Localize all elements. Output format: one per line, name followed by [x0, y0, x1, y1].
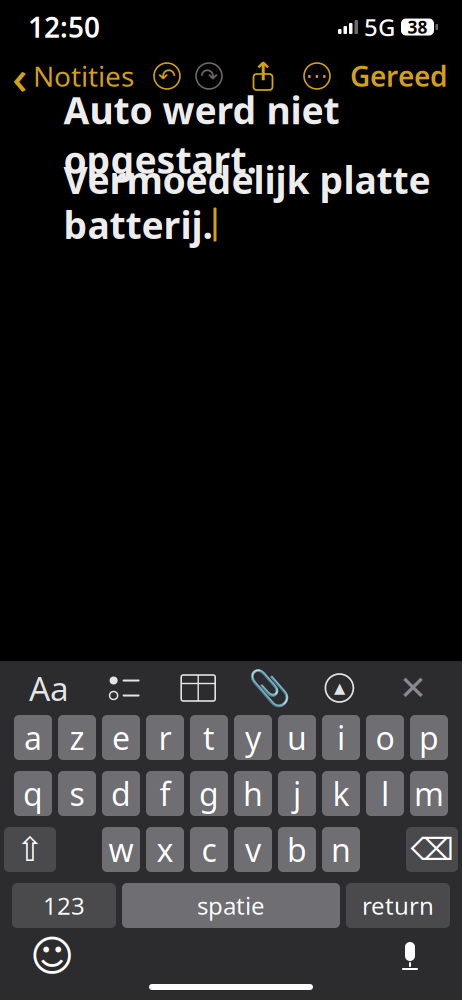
staticText: 5G: [364, 11, 395, 43]
button[interactable]: o: [366, 715, 404, 760]
button[interactable]: t: [190, 715, 228, 760]
button[interactable]: q: [14, 771, 52, 816]
staticText: v: [245, 828, 261, 871]
staticText: ☺: [30, 932, 74, 980]
staticText: x: [156, 828, 173, 871]
button[interactable]: u: [278, 715, 316, 760]
button[interactable]: f: [146, 771, 184, 816]
button[interactable]: Checklist: [96, 666, 154, 710]
button[interactable]: Markup: [312, 666, 366, 710]
button[interactable]: p: [410, 715, 448, 760]
button[interactable]: l: [366, 771, 404, 816]
button[interactable]: More: [296, 61, 338, 91]
button[interactable]: x: [146, 827, 184, 872]
staticText: a: [24, 716, 42, 759]
button[interactable]: Close: [382, 666, 444, 710]
button[interactable]: Share: [242, 60, 284, 92]
button[interactable]: ‹: [0, 38, 134, 114]
staticText: batterij.: [63, 200, 212, 249]
staticText: ↑: [252, 57, 273, 86]
button[interactable]: Redo: [188, 61, 230, 91]
staticText: b: [287, 828, 307, 871]
button[interactable]: d: [102, 771, 140, 816]
button[interactable]: k: [322, 771, 360, 816]
staticText: 12:50: [28, 8, 100, 46]
staticText: 38: [407, 15, 427, 38]
button[interactable]: m: [410, 771, 448, 816]
staticText: Auto werd niet opgestart.: [63, 85, 339, 184]
staticText: s: [69, 772, 84, 815]
button[interactable]: Undo: [146, 61, 188, 91]
staticText: l: [381, 772, 389, 815]
button[interactable]: n: [322, 827, 360, 872]
staticText: j: [293, 772, 301, 815]
button[interactable]: z: [58, 715, 96, 760]
staticText: w: [108, 828, 133, 871]
staticText: y: [245, 716, 261, 759]
button[interactable]: Delete: [406, 827, 458, 872]
staticText: ⌫: [410, 832, 453, 867]
staticText: Aa: [29, 666, 69, 710]
staticText: 📎: [248, 668, 291, 708]
staticText: spatie: [197, 890, 265, 921]
staticText: k: [332, 772, 349, 815]
button[interactable]: spatie: [122, 883, 340, 928]
button[interactable]: c: [190, 827, 228, 872]
staticText: i: [337, 716, 345, 759]
button[interactable]: j: [278, 771, 316, 816]
button[interactable]: r: [146, 715, 184, 760]
button[interactable]: Gereed: [350, 51, 462, 101]
button[interactable]: Format: [18, 666, 80, 710]
button[interactable]: Shift: [4, 827, 56, 872]
staticText: p: [419, 716, 439, 759]
button[interactable]: a: [14, 715, 52, 760]
staticText: 123: [43, 890, 85, 921]
staticText: Gereed: [350, 57, 448, 95]
staticText: t: [203, 716, 215, 759]
staticText: ↶: [158, 64, 176, 88]
button[interactable]: Attach: [243, 666, 297, 710]
button[interactable]: i: [322, 715, 360, 760]
staticText: ✕: [399, 669, 427, 707]
button[interactable]: s: [58, 771, 96, 816]
staticText: return: [362, 890, 434, 921]
button[interactable]: Table: [169, 666, 227, 710]
staticText: ⇧: [16, 831, 44, 868]
button[interactable]: h: [234, 771, 272, 816]
button[interactable]: b: [278, 827, 316, 872]
staticText: n: [331, 828, 351, 871]
staticText: d: [111, 772, 131, 815]
staticText: h: [243, 772, 263, 815]
staticText: g: [199, 772, 219, 815]
staticText: Vermoedelijk platte: [63, 155, 430, 204]
staticText: c: [201, 828, 216, 871]
staticText: ‹: [12, 44, 28, 108]
button[interactable]: e: [102, 715, 140, 760]
button[interactable]: v: [234, 827, 272, 872]
button[interactable]: Emoji: [30, 934, 74, 978]
button[interactable]: y: [234, 715, 272, 760]
staticText: ↷: [200, 64, 218, 88]
staticText: ⋯: [305, 63, 328, 89]
button[interactable]: g: [190, 771, 228, 816]
staticText: Notities: [33, 57, 134, 95]
staticText: u: [287, 716, 307, 759]
button[interactable]: Dictate: [388, 934, 432, 978]
button[interactable]: w: [102, 827, 140, 872]
button[interactable]: 123: [12, 883, 116, 928]
staticText: ▲: [334, 680, 345, 696]
staticText: q: [23, 772, 43, 815]
staticText: r: [158, 716, 171, 759]
staticText: z: [69, 716, 84, 759]
staticText: m: [414, 772, 444, 815]
staticText: e: [112, 716, 130, 759]
staticText: o: [375, 716, 394, 759]
staticText: f: [159, 772, 170, 815]
button[interactable]: return: [346, 883, 450, 928]
